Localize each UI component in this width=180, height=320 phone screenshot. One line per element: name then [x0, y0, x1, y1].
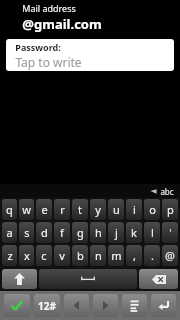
staticText: q [6, 202, 13, 217]
button[interactable]: a [2, 222, 17, 243]
button[interactable]: s [19, 222, 34, 243]
button[interactable]: d [36, 222, 52, 243]
staticText: @gmail.com [22, 15, 102, 33]
staticText: p [167, 202, 174, 217]
button[interactable]: . [144, 245, 160, 266]
staticText: k [131, 225, 137, 240]
button[interactable]: OK [4, 294, 30, 317]
button[interactable]: t [72, 199, 88, 220]
staticText: u [113, 202, 120, 217]
staticText: d [41, 225, 48, 240]
button[interactable]: 12# [34, 294, 60, 317]
staticText: ' [169, 225, 172, 240]
button[interactable]: z [2, 245, 17, 266]
staticText: , [133, 248, 136, 263]
staticText: @ [165, 248, 175, 263]
button[interactable]: Shift [2, 269, 37, 289]
button[interactable]: b [72, 245, 88, 266]
staticText: l [151, 225, 154, 240]
staticText: z [7, 248, 13, 263]
staticText: b [77, 248, 84, 263]
button[interactable]: i [126, 199, 142, 220]
staticText: y [95, 202, 101, 217]
button[interactable]: Options [122, 294, 147, 317]
staticText: Password: [15, 41, 61, 53]
button[interactable]: n [90, 245, 106, 266]
button[interactable]: , [126, 245, 142, 266]
button[interactable]: j [108, 222, 124, 243]
button[interactable]: Password: [6, 39, 174, 71]
button[interactable]: o [144, 199, 160, 220]
staticText: a [6, 225, 13, 240]
button[interactable]: x [19, 245, 34, 266]
staticText: c [41, 248, 47, 263]
button[interactable]: p [162, 199, 178, 220]
staticText: v [59, 248, 65, 263]
button[interactable]: w [19, 199, 34, 220]
button[interactable]: f [54, 222, 70, 243]
button[interactable]: u [108, 199, 124, 220]
staticText: t [78, 202, 82, 217]
staticText: f [60, 225, 64, 240]
staticText: h [95, 225, 102, 240]
button[interactable]: v [54, 245, 70, 266]
button[interactable]: @ [162, 245, 178, 266]
staticText: . [151, 248, 154, 263]
staticText: e [41, 202, 48, 217]
staticText: Mail address [22, 2, 76, 14]
staticText: w [22, 202, 31, 217]
staticText: 12# [38, 299, 56, 313]
button[interactable]: Move left [64, 294, 89, 317]
button[interactable]: g [72, 222, 88, 243]
button[interactable]: e [36, 199, 52, 220]
button[interactable]: Backspace [139, 269, 178, 289]
staticText: i [133, 202, 136, 217]
staticText: r [60, 202, 65, 217]
staticText: o [149, 202, 156, 217]
button[interactable]: h [90, 222, 106, 243]
staticText: s [24, 225, 30, 240]
staticText: m [111, 248, 122, 263]
staticText: abc [160, 186, 174, 197]
staticText: x [24, 248, 30, 263]
button[interactable]: c [36, 245, 52, 266]
button[interactable]: r [54, 199, 70, 220]
button[interactable]: k [126, 222, 142, 243]
staticText: n [95, 248, 102, 263]
button[interactable]: Move right [93, 294, 118, 317]
button[interactable]: l [144, 222, 160, 243]
button[interactable]: q [2, 199, 17, 220]
button[interactable]: Enter [151, 294, 176, 317]
button[interactable]: y [90, 199, 106, 220]
staticText: g [77, 225, 84, 240]
button[interactable]: m [108, 245, 124, 266]
button[interactable]: ' [162, 222, 178, 243]
staticText: Tap to write [15, 54, 82, 70]
button[interactable]: Space [39, 269, 137, 289]
staticText: j [115, 225, 118, 240]
